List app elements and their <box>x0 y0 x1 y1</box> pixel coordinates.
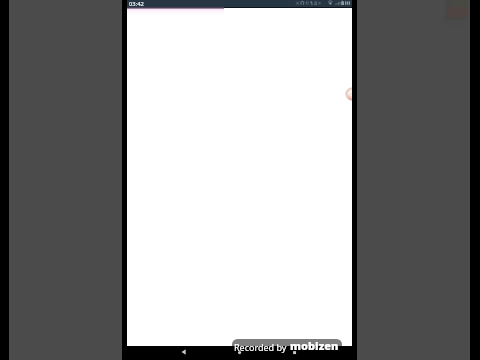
staticText: 03:42 <box>129 0 144 7</box>
button[interactable]: Back <box>177 347 191 360</box>
button[interactable]: Home <box>233 347 247 360</box>
button[interactable]: Recording controls <box>345 87 352 101</box>
staticText: mobizen <box>290 338 339 353</box>
button[interactable]: Recent apps <box>288 347 302 360</box>
staticText: Recorded by <box>234 341 287 353</box>
